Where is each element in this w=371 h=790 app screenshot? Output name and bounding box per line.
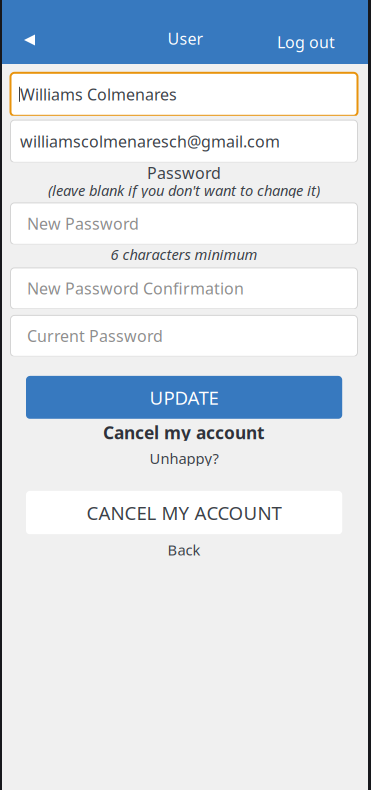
staticText: New Password Confirmation	[27, 278, 244, 299]
staticText: Cancel my account	[103, 421, 265, 444]
staticText: Williams Colmenares	[20, 84, 177, 105]
button[interactable]: Back	[167, 542, 200, 557]
staticText: Back	[167, 540, 200, 560]
button[interactable]: UPDATE	[26, 376, 342, 419]
staticText: williamscolmenaresch@gmail.com	[20, 131, 280, 152]
button[interactable]: Log out	[259, 3, 371, 60]
staticText: 6 characters minimum	[110, 245, 257, 264]
staticText: User	[167, 28, 203, 49]
staticText: Unhappy?	[149, 449, 218, 468]
staticText: (leave blank if you don't want to change…	[48, 181, 320, 200]
staticText: CANCEL MY ACCOUNT	[87, 500, 282, 525]
staticText: Log out	[277, 31, 335, 53]
staticText: UPDATE	[150, 385, 219, 410]
staticText: Current Password	[27, 325, 163, 346]
button[interactable]: CANCEL MY ACCOUNT	[26, 491, 342, 534]
staticText: Password	[147, 162, 221, 183]
staticText: New Password	[27, 213, 139, 234]
button[interactable]: Back	[0, 4, 53, 59]
